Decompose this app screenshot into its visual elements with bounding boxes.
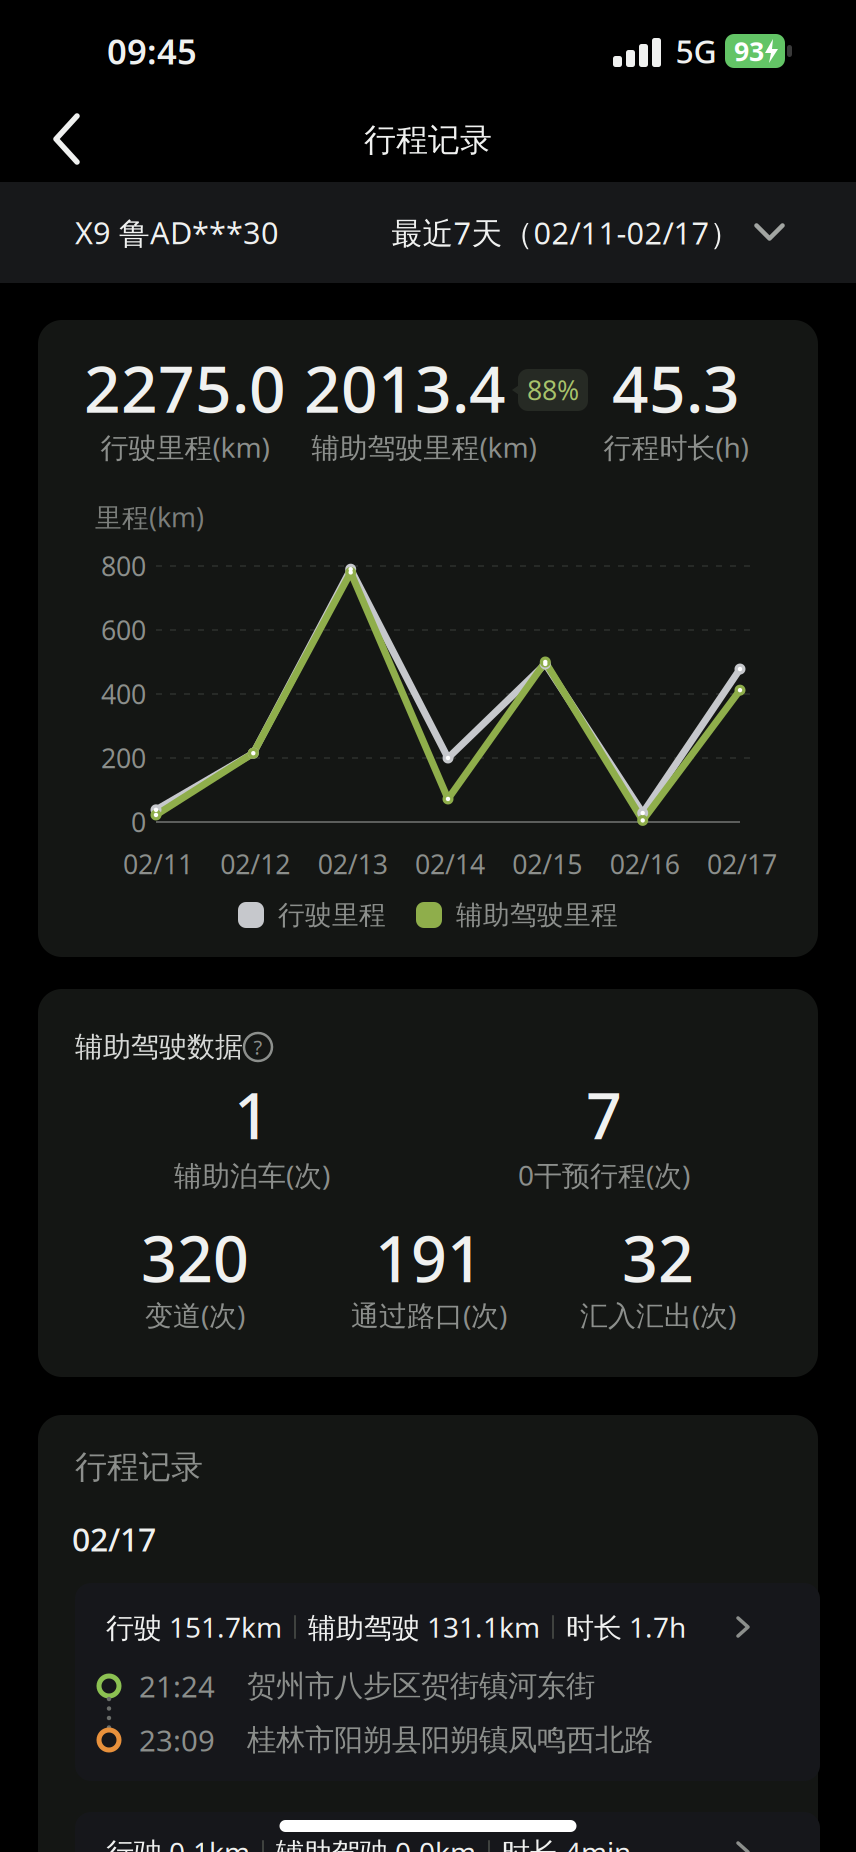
- staticText: 最近7天（02/11-02/17）: [391, 212, 740, 253]
- staticText: 800: [101, 548, 146, 584]
- staticText: 02/11: [123, 846, 193, 882]
- staticText: 行驶里程(km): [100, 428, 269, 466]
- staticText: 行程记录: [364, 120, 492, 160]
- staticText: 32: [622, 1216, 694, 1300]
- staticText: 93: [734, 33, 764, 69]
- staticText: 辅助驾驶里程: [456, 899, 618, 931]
- staticText: 通过路口(次): [351, 1296, 507, 1334]
- staticText: 23:09: [139, 1720, 215, 1759]
- staticText: 600: [101, 612, 146, 648]
- staticText: 09:45: [107, 28, 197, 74]
- button[interactable]: 行驶 151.7km: [75, 1583, 820, 1781]
- staticText: 2013.4: [304, 345, 506, 430]
- staticText: 辅助泊车(次): [174, 1156, 330, 1194]
- staticText: 桂林市阳朔县阳朔镇凤鸣西北路: [247, 1722, 653, 1758]
- staticText: 贺州市八步区贺街镇河东街: [247, 1668, 595, 1704]
- staticText: 0: [131, 804, 146, 840]
- staticText: 02/15: [512, 846, 582, 882]
- staticText: ?: [253, 1034, 262, 1060]
- staticText: 1: [234, 1073, 270, 1157]
- staticText: 45.3: [612, 345, 740, 430]
- button[interactable]: 最近7天（02/11-02/17）: [391, 182, 784, 283]
- staticText: 400: [101, 676, 146, 712]
- staticText: 行驶 0.1km: [106, 1833, 250, 1852]
- staticText: 02/16: [610, 846, 680, 882]
- staticText: 变道(次): [145, 1296, 245, 1334]
- staticText: 02/14: [415, 846, 485, 882]
- staticText: 02/17: [72, 1518, 156, 1560]
- staticText: 时长 4min: [502, 1833, 631, 1852]
- staticText: 辅助驾驶 131.1km: [308, 1608, 540, 1646]
- staticText: 汇入汇出(次): [580, 1296, 736, 1334]
- staticText: 辅助驾驶 0.0km: [276, 1833, 476, 1852]
- button[interactable]: 行驶 0.1km: [75, 1812, 820, 1852]
- staticText: 200: [101, 740, 146, 776]
- staticText: 7: [586, 1073, 622, 1157]
- staticText: 02/12: [220, 846, 290, 882]
- staticText: X9 鲁AD***30: [75, 212, 279, 253]
- staticText: 88%: [527, 372, 579, 408]
- staticText: 02/17: [707, 846, 777, 882]
- button[interactable]: Back: [30, 102, 104, 176]
- staticText: 5G: [675, 30, 716, 72]
- staticText: 行驶里程: [278, 899, 386, 931]
- staticText: 191: [375, 1216, 483, 1300]
- button[interactable]: 辅助驾驶数据说明: [243, 1032, 273, 1062]
- staticText: 0干预行程(次): [518, 1156, 690, 1194]
- staticText: 21:24: [139, 1666, 215, 1705]
- staticText: 02/13: [318, 846, 388, 882]
- staticText: 2275.0: [84, 345, 286, 430]
- staticText: 辅助驾驶数据: [75, 1030, 243, 1064]
- staticText: 行驶 151.7km: [106, 1608, 282, 1646]
- staticText: 行程时长(h): [603, 428, 748, 466]
- staticText: 320: [141, 1216, 249, 1300]
- staticText: 里程(km): [95, 499, 204, 535]
- staticText: 辅助驾驶里程(km): [311, 428, 536, 466]
- staticText: 时长 1.7h: [566, 1608, 686, 1646]
- staticText: 行程记录: [75, 1447, 203, 1487]
